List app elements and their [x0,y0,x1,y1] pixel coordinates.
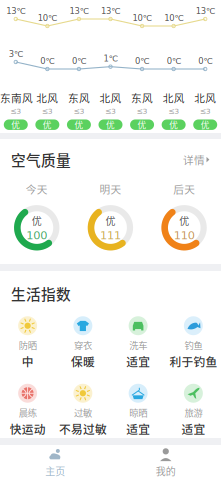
staticText: 北风 [194,90,216,105]
staticText: 0℃ [135,56,149,66]
staticText: ≤3 [168,106,179,115]
staticText: 100 [26,229,47,242]
staticText: 不易过敏 [59,420,107,437]
staticText: 详情 [183,152,205,167]
staticText: ≤3 [200,106,211,115]
staticText: ≤3 [10,106,21,115]
button[interactable]: 防晒 [0,316,55,370]
staticText: 空气质量 [11,149,71,170]
staticText: 适宜 [126,420,150,437]
staticText: 明天 [99,181,121,197]
staticText: 钓鱼 [184,338,202,352]
staticText: 优 [179,213,189,228]
staticText: 优 [106,118,115,131]
staticText: 利于钓鱼 [169,353,217,370]
button[interactable]: 晨练 [0,384,55,437]
staticText: 防晒 [19,338,37,352]
staticText: 0℃ [198,56,212,66]
staticText: 0℃ [40,56,54,66]
staticText: 生活指数 [11,283,71,304]
staticText: 北风 [36,90,58,105]
staticText: 东风 [131,90,153,105]
staticText: 保暖 [71,353,95,370]
staticText: 快运动 [10,420,46,437]
staticText: 10℃ [133,13,152,23]
staticText: 13℃ [101,6,120,16]
staticText: 优 [138,118,147,131]
staticText: 东南风 [0,90,33,105]
button[interactable]: 穿衣 [55,316,110,370]
staticText: 优 [105,213,115,228]
staticText: 我的 [156,464,176,478]
staticText: 3℃ [9,49,23,59]
staticText: 110 [174,229,195,242]
staticText: ≤3 [105,106,116,115]
staticText: 13℃ [6,6,25,16]
staticText: ≤3 [42,106,53,115]
button[interactable]: 过敏 [55,384,110,437]
staticText: 适宜 [126,353,150,370]
staticText: 北风 [99,90,121,105]
button[interactable]: 晾晒 [110,384,166,437]
staticText: 晾晒 [129,406,147,419]
staticText: 东风 [68,90,90,105]
staticText: 1℃ [103,54,117,64]
staticText: 洗车 [129,338,147,352]
staticText: 10℃ [38,13,57,23]
staticText: 优 [11,118,20,131]
button[interactable]: 旅游 [166,384,221,437]
staticText: 优 [32,213,42,228]
staticText: 111 [100,229,121,242]
staticText: 旅游 [184,406,202,419]
button[interactable]: 主页 [0,440,110,480]
staticText: 0℃ [72,56,86,66]
staticText: ≤3 [73,106,84,115]
staticText: 过敏 [74,406,92,419]
button[interactable]: 钓鱼 [166,316,221,370]
staticText: 0℃ [167,56,181,66]
staticText: 晨练 [19,406,37,419]
staticText: 优 [169,118,178,131]
button[interactable]: 洗车 [110,316,166,370]
staticText: 后天 [173,181,195,197]
staticText: 北风 [163,90,185,105]
staticText: 13℃ [69,6,88,16]
staticText: 穿衣 [74,338,92,352]
staticText: 适宜 [181,420,205,437]
staticText: 优 [74,118,83,131]
staticText: 主页 [45,464,65,478]
staticText: 优 [201,118,210,131]
staticText: 中 [22,353,34,370]
staticText: 优 [43,118,52,131]
button[interactable]: 我的 [110,440,221,480]
staticText: 13℃ [196,6,215,16]
staticText: 10℃ [164,13,183,23]
staticText: 今天 [26,181,48,197]
button[interactable]: 详情 [183,152,210,167]
staticText: ≤3 [137,106,148,115]
